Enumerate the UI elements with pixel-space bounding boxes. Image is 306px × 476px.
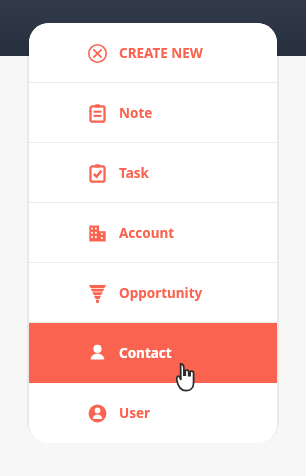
staticText: Task [119, 164, 149, 182]
staticText: Opportunity [119, 284, 203, 302]
button[interactable]: Contact [29, 323, 277, 383]
button[interactable]: Account [29, 203, 277, 263]
staticText: CREATE NEW [119, 44, 203, 62]
staticText: User [119, 404, 151, 422]
button[interactable]: CREATE NEW [29, 23, 277, 83]
button[interactable]: Task [29, 143, 277, 203]
button[interactable]: Opportunity [29, 263, 277, 323]
button[interactable]: User [29, 383, 277, 443]
staticText: Note [119, 104, 153, 122]
button[interactable]: Note [29, 83, 277, 143]
staticText: Account [119, 224, 175, 242]
staticText: Contact [119, 344, 172, 362]
